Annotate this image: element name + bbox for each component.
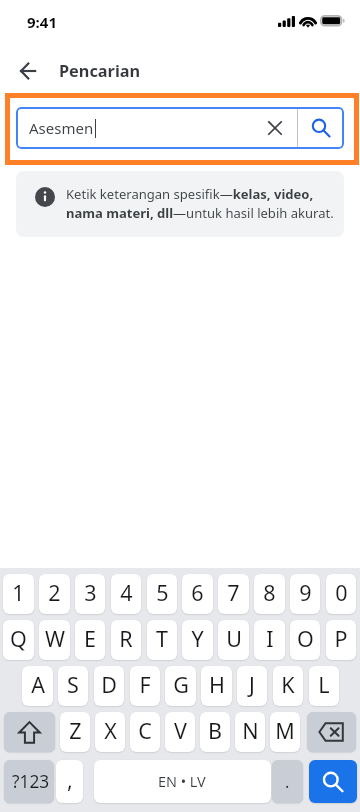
- button[interactable]: Z: [60, 712, 90, 752]
- button[interactable]: L: [309, 666, 339, 706]
- button[interactable]: X: [95, 712, 125, 752]
- staticText: T: [156, 624, 168, 653]
- staticText: Asesmen: [29, 118, 94, 138]
- staticText: U: [226, 624, 242, 653]
- button[interactable]: EN • LV: [94, 760, 271, 803]
- button[interactable]: 6: [182, 574, 213, 614]
- button[interactable]: T: [147, 620, 177, 660]
- button[interactable]: U: [218, 620, 249, 660]
- staticText: Pencarian: [59, 60, 141, 82]
- button[interactable]: .: [272, 760, 303, 803]
- button[interactable]: 5: [147, 574, 177, 614]
- staticText: N: [242, 716, 259, 745]
- staticText: ,: [67, 765, 73, 794]
- staticText: C: [138, 716, 152, 745]
- staticText: F: [139, 670, 151, 699]
- staticText: 9: [299, 578, 312, 607]
- staticText: 8: [263, 578, 276, 607]
- button[interactable]: 3: [75, 574, 105, 614]
- button[interactable]: K: [273, 666, 303, 706]
- button[interactable]: S: [58, 666, 88, 706]
- button[interactable]: 0: [326, 574, 356, 614]
- staticText: I: [266, 624, 274, 653]
- button[interactable]: N: [235, 712, 265, 752]
- staticText: 3: [84, 578, 97, 607]
- button[interactable]: E: [75, 620, 105, 660]
- button[interactable]: 2: [39, 574, 70, 614]
- staticText: S: [67, 670, 79, 699]
- staticText: H: [209, 670, 225, 699]
- staticText: 4: [120, 578, 133, 607]
- staticText: Z: [69, 716, 82, 745]
- button[interactable]: ?123: [4, 760, 54, 803]
- button[interactable]: Search: [298, 107, 343, 149]
- button[interactable]: Backspace: [307, 712, 356, 752]
- staticText: Ketik keterangan spesifik—kelas, video, …: [66, 185, 344, 222]
- staticText: K: [281, 670, 295, 699]
- button[interactable]: F: [130, 666, 160, 706]
- button[interactable]: Search: [309, 760, 357, 803]
- button[interactable]: H: [201, 666, 232, 706]
- staticText: 6: [191, 578, 204, 607]
- staticText: G: [173, 670, 189, 699]
- button[interactable]: J: [237, 666, 267, 706]
- button[interactable]: Back: [6, 49, 50, 93]
- staticText: Y: [191, 624, 204, 653]
- button[interactable]: Shift: [4, 712, 55, 752]
- button[interactable]: 1: [3, 574, 34, 614]
- staticText: Q: [10, 624, 27, 653]
- button[interactable]: Clear: [252, 107, 297, 149]
- staticText: W: [45, 624, 65, 653]
- staticText: O: [297, 624, 314, 653]
- staticText: 7: [227, 578, 240, 607]
- staticText: B: [208, 716, 222, 745]
- button[interactable]: 4: [111, 574, 141, 614]
- button[interactable]: O: [290, 620, 320, 660]
- button[interactable]: R: [111, 620, 141, 660]
- button[interactable]: M: [270, 712, 300, 752]
- staticText: A: [31, 670, 45, 699]
- button[interactable]: D: [94, 666, 124, 706]
- staticText: E: [84, 624, 96, 653]
- button[interactable]: 8: [254, 574, 285, 614]
- button[interactable]: Y: [182, 620, 213, 660]
- button[interactable]: P: [326, 620, 356, 660]
- button[interactable]: ,: [56, 760, 83, 803]
- staticText: M: [275, 716, 295, 745]
- staticText: 9:41: [27, 12, 57, 32]
- staticText: R: [119, 624, 133, 653]
- button[interactable]: G: [165, 666, 196, 706]
- button[interactable]: V: [165, 712, 195, 752]
- staticText: J: [249, 670, 255, 699]
- staticText: 1: [12, 578, 25, 607]
- staticText: .: [285, 771, 290, 793]
- button[interactable]: W: [39, 620, 70, 660]
- staticText: 0: [335, 578, 348, 607]
- staticText: 2: [48, 578, 61, 607]
- staticText: D: [101, 670, 117, 699]
- staticText: ?123: [12, 770, 50, 794]
- staticText: V: [174, 716, 187, 745]
- button[interactable]: Q: [3, 620, 34, 660]
- button[interactable]: B: [200, 712, 230, 752]
- button[interactable]: A: [22, 666, 53, 706]
- staticText: P: [334, 624, 348, 653]
- staticText: X: [104, 716, 117, 745]
- staticText: EN • LV: [158, 772, 206, 792]
- staticText: 5: [156, 578, 169, 607]
- button[interactable]: C: [130, 712, 160, 752]
- button[interactable]: I: [254, 620, 285, 660]
- button[interactable]: 7: [218, 574, 249, 614]
- staticText: L: [318, 670, 330, 699]
- button[interactable]: 9: [290, 574, 320, 614]
